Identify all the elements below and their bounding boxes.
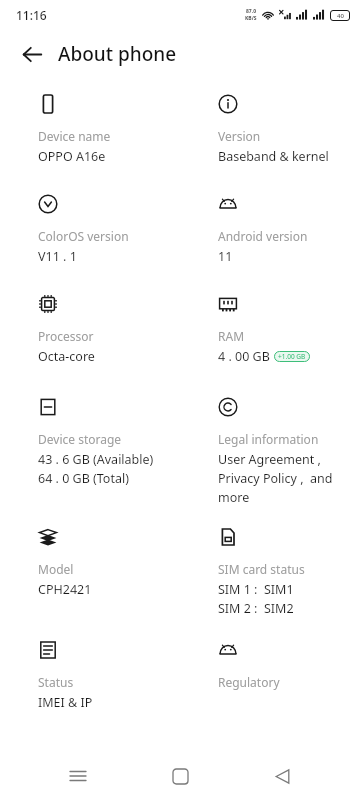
- staticText: SIM 2 : SIM2: [218, 600, 294, 617]
- staticText: 87.0: [246, 8, 256, 15]
- staticText: 11:16: [16, 7, 47, 23]
- staticText: Processor: [38, 328, 94, 344]
- staticText: SIM 1 : SIM1: [218, 581, 294, 598]
- staticText: CPH2421: [38, 581, 92, 598]
- staticText: Baseband & kernel: [218, 148, 329, 165]
- staticText: 4 . 00 GB: [218, 348, 270, 365]
- button[interactable]: Legal information: [180, 393, 360, 523]
- staticText: KB/S: [245, 15, 257, 22]
- staticText: V11 . 1: [38, 248, 77, 265]
- button[interactable]: Back: [14, 36, 50, 72]
- staticText: Device name: [38, 128, 111, 144]
- button[interactable]: Home: [156, 752, 204, 800]
- staticText: Legal information: [218, 431, 319, 447]
- button[interactable]: ColorOS version: [0, 190, 180, 290]
- staticText: ColorOS version: [38, 228, 129, 244]
- button[interactable]: SIM card status: [180, 523, 360, 636]
- staticText: Regulatory: [218, 674, 280, 690]
- staticText: Status: [38, 674, 74, 690]
- staticText: Privacy Policy , and: [218, 470, 333, 487]
- button[interactable]: RAM: [180, 290, 360, 393]
- staticText: User Agreement ,: [218, 451, 321, 468]
- button[interactable]: Device storage: [0, 393, 180, 523]
- staticText: 64 . 0 GB (Total): [38, 470, 129, 487]
- staticText: +1.00 GB: [278, 352, 306, 361]
- staticText: OPPO A16e: [38, 148, 106, 165]
- button[interactable]: Model: [0, 523, 180, 636]
- staticText: About phone: [58, 41, 177, 67]
- staticText: Octa-core: [38, 348, 95, 365]
- staticText: Android version: [218, 228, 308, 244]
- staticText: 40: [337, 12, 344, 20]
- button[interactable]: Recents: [54, 752, 102, 800]
- staticText: Version: [218, 128, 261, 144]
- button[interactable]: Back: [258, 752, 306, 800]
- button[interactable]: Device name: [0, 90, 180, 190]
- staticText: RAM: [218, 328, 245, 344]
- button[interactable]: Android version: [180, 190, 360, 290]
- staticText: IMEI & IP: [38, 694, 93, 711]
- button[interactable]: Status: [0, 636, 180, 736]
- button[interactable]: Regulatory: [180, 636, 360, 736]
- staticText: SIM card status: [218, 561, 305, 577]
- button[interactable]: Version: [180, 90, 360, 190]
- staticText: Model: [38, 561, 74, 577]
- staticText: 43 . 6 GB (Available): [38, 451, 154, 468]
- staticText: Device storage: [38, 431, 122, 447]
- button[interactable]: Processor: [0, 290, 180, 393]
- staticText: more: [218, 489, 250, 506]
- staticText: 11: [218, 248, 233, 265]
